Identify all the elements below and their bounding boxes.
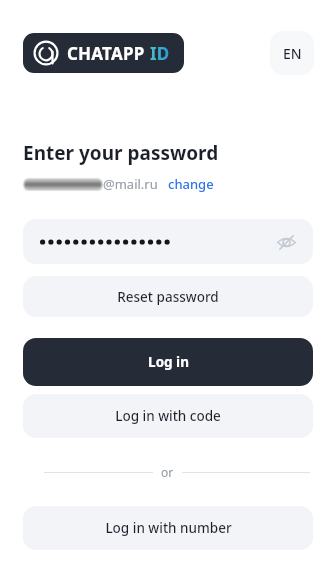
button[interactable]: change (168, 175, 214, 193)
button[interactable]: Show password (273, 229, 299, 255)
button[interactable]: Reset password (23, 276, 313, 317)
button[interactable]: CHATAPP (23, 33, 184, 73)
staticText: Log in with code (115, 407, 221, 425)
staticText: CHATAPP (67, 42, 145, 65)
staticText: Enter your password (23, 140, 219, 166)
staticText: @mail.ru (103, 175, 158, 193)
staticText: change (168, 175, 214, 193)
staticText: ID (150, 42, 170, 65)
staticText: Log in with number (105, 519, 232, 537)
button[interactable]: Log in with code (23, 394, 313, 438)
staticText: Log in (148, 353, 189, 371)
button[interactable]: Log in (23, 338, 313, 386)
staticText: or (161, 464, 174, 480)
button[interactable]: Log in with number (23, 506, 313, 550)
button[interactable]: EN (270, 31, 314, 75)
staticText: EN (283, 44, 302, 63)
button[interactable]: Show password (23, 219, 313, 264)
staticText: Reset password (117, 288, 219, 306)
